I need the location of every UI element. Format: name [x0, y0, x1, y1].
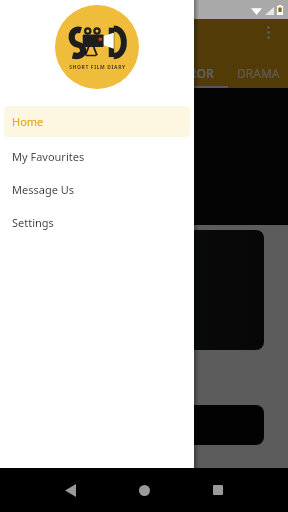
- staticText: My Favourites: [12, 149, 85, 164]
- button[interactable]: Recent apps: [203, 475, 233, 505]
- staticText: SHORT FILM DIARY: [69, 64, 126, 71]
- button[interactable]: DRAMA: [228, 58, 288, 88]
- button[interactable]: Home: [129, 475, 159, 505]
- staticText: Message Us: [12, 182, 75, 197]
- button[interactable]: Back: [55, 475, 85, 505]
- button[interactable]: Settings: [4, 207, 190, 238]
- button[interactable]: L E S S: [8, 230, 264, 350]
- button[interactable]: Home: [4, 106, 190, 137]
- button[interactable]: HORROR: [148, 58, 228, 88]
- staticText: HORROR: [163, 65, 214, 81]
- button[interactable]: Message Us: [4, 174, 190, 205]
- staticText: Home: [12, 114, 44, 129]
- staticText: DRAMA: [237, 65, 280, 81]
- button[interactable]: My Favourites: [4, 141, 190, 172]
- button[interactable]: [8, 405, 264, 445]
- staticText: Settings: [12, 215, 54, 230]
